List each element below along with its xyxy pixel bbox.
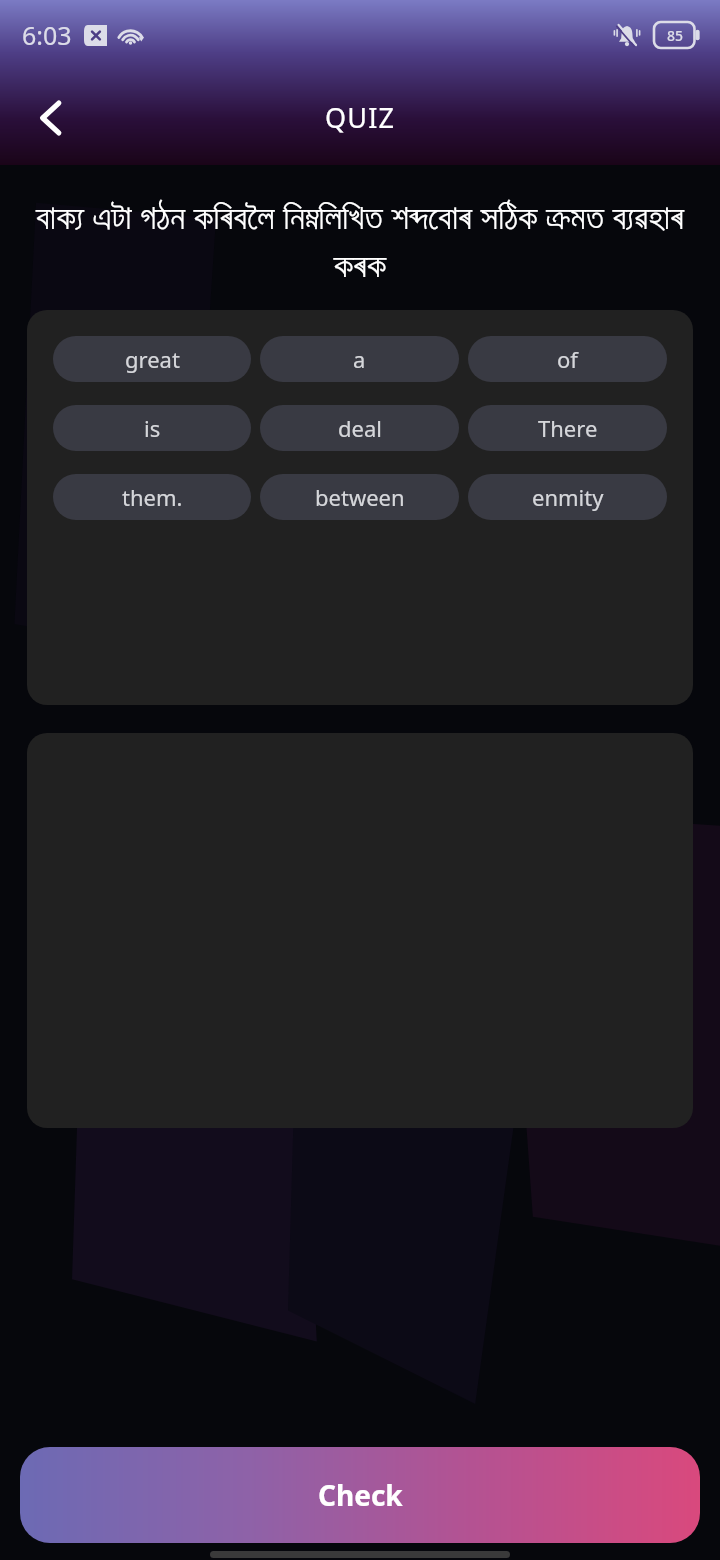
staticText: is xyxy=(144,413,161,443)
staticText: great xyxy=(125,344,180,374)
button[interactable]: Back xyxy=(22,89,80,147)
staticText: them. xyxy=(122,482,183,512)
button[interactable]: of xyxy=(468,336,667,382)
staticText: enmity xyxy=(532,482,604,512)
staticText: বাক্য এটা গঠন কৰিবলৈ নিম্নলিখিত শব্দবোৰ … xyxy=(10,193,710,284)
staticText: There xyxy=(538,413,598,443)
staticText: 85 xyxy=(667,26,684,45)
button[interactable]: between xyxy=(260,474,459,520)
staticText: deal xyxy=(338,413,382,443)
staticText: 6:03 xyxy=(22,18,72,52)
button[interactable]: enmity xyxy=(468,474,667,520)
button[interactable]: great xyxy=(53,336,251,382)
button[interactable]: them. xyxy=(53,474,251,520)
button[interactable]: a xyxy=(260,336,459,382)
button[interactable]: Check xyxy=(20,1447,700,1543)
staticText: a xyxy=(353,344,366,374)
button[interactable]: There xyxy=(468,405,667,451)
staticText: Check xyxy=(318,1476,403,1514)
staticText: of xyxy=(557,344,578,374)
button[interactable]: deal xyxy=(260,405,459,451)
staticText: QUIZ xyxy=(325,99,396,136)
staticText: between xyxy=(315,482,405,512)
button[interactable]: is xyxy=(53,405,251,451)
